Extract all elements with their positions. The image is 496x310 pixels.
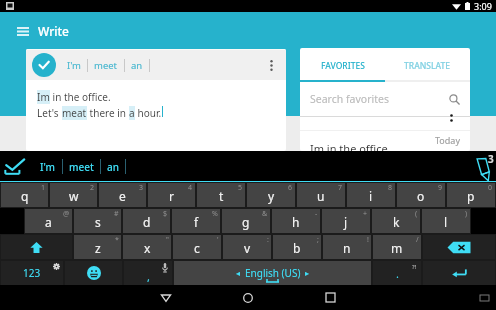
staticText: w [69,188,79,204]
button[interactable]: Back [144,285,188,310]
staticText: ◂ [236,269,241,278]
button[interactable]: an [125,59,149,72]
staticText: m [391,240,403,256]
button[interactable]: meet [63,160,100,174]
button[interactable]: Accept all suggestions [4,158,26,175]
button[interactable]: c [173,235,221,259]
staticText: 4 [188,183,193,193]
staticText: . [396,266,399,281]
staticText: - [315,209,318,219]
button[interactable]: Home [226,285,270,310]
staticText: " [166,235,169,245]
staticText: 3 [488,152,494,166]
staticText: f [194,214,199,230]
button[interactable]: TRANSLATE [385,48,470,80]
staticText: I'm [67,59,81,72]
button[interactable]: meet [88,59,124,72]
button[interactable]: Accept corrections [32,53,56,77]
button[interactable]: e [99,183,146,207]
button[interactable]: an [101,160,125,174]
button[interactable]: ◂ [174,261,371,285]
staticText: ! [367,235,369,245]
button[interactable]: i [347,183,395,207]
staticText: v [244,240,251,256]
staticText: Im in the office. [310,141,391,151]
staticText: n [343,240,351,256]
staticText: in the office. [50,90,111,104]
staticText: % [212,209,218,219]
button[interactable]: z [74,235,121,259]
button[interactable]: w [50,183,97,207]
staticText: TRANSLATE [404,60,451,72]
button[interactable]: FAVORITES [300,48,385,80]
button[interactable]: I'm [61,59,87,72]
staticText: 3 [139,183,144,193]
button[interactable]: More options [264,58,278,72]
staticText: / [416,235,419,245]
staticText: p [467,188,475,204]
staticText: u [317,188,325,204]
staticText: + [363,209,368,219]
staticText: ?! [412,263,417,271]
button[interactable]: Shift [1,235,72,259]
button[interactable]: n [323,235,371,259]
button[interactable]: u [297,183,345,207]
button[interactable]: d [123,209,170,233]
staticText: ' [217,235,219,245]
button[interactable]: I'm [34,160,62,174]
button[interactable]: a [25,209,72,233]
staticText: c [194,240,200,256]
button[interactable]: m [373,235,421,259]
other: Keyboard [480,295,489,301]
button[interactable]: Open navigation menu [14,22,32,40]
button[interactable]: 123 [1,261,63,285]
staticText: 6 [288,183,293,193]
button[interactable]: j [322,209,370,233]
button[interactable]: b [273,235,321,259]
staticText: meet [69,160,94,174]
button[interactable]: Recent apps [308,285,352,310]
button[interactable]: Emoji [65,261,122,285]
staticText: 8 [388,183,393,193]
button[interactable]: , [124,261,172,285]
button[interactable]: g [222,209,270,233]
button[interactable]: k [372,209,420,233]
button[interactable]: Delete [423,235,495,259]
button[interactable]: q [1,183,48,207]
staticText: hour. [135,106,162,120]
staticText: 5 [238,183,243,193]
staticText: Today [435,134,460,146]
button[interactable]: o [397,183,445,207]
staticText: 123 [23,266,41,280]
button[interactable]: f [172,209,220,233]
staticText: there in [87,106,129,120]
button[interactable]: r [148,183,195,207]
button[interactable]: x [123,235,171,259]
staticText: ; [317,235,319,245]
button[interactable]: l [422,209,470,233]
staticText: x [144,240,151,256]
button[interactable]: Row options [450,114,453,122]
button[interactable]: Today [300,131,470,151]
staticText: # [114,209,119,219]
button[interactable]: Handwriting input [476,158,490,181]
staticText: a [45,214,52,230]
staticText: * [115,235,119,245]
staticText: z [95,240,101,256]
button[interactable]: . [373,261,421,285]
button[interactable]: Enter [423,261,495,285]
button[interactable]: t [197,183,245,207]
button[interactable]: h [272,209,320,233]
staticText: i [369,188,373,204]
button[interactable]: y [247,183,295,207]
staticText: s [95,214,101,230]
staticText: e [119,188,126,204]
button[interactable]: s [74,209,121,233]
staticText: r [169,188,174,204]
staticText: j [344,214,348,230]
button[interactable]: v [223,235,271,259]
button[interactable]: p [447,183,495,207]
staticText: : [267,235,269,245]
staticText: & [262,209,268,219]
staticText: o [417,188,425,204]
